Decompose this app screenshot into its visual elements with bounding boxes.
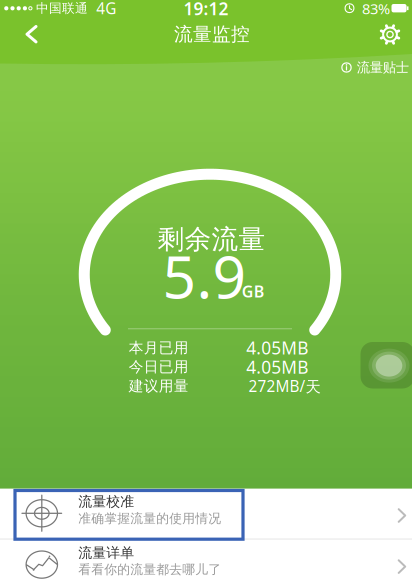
button[interactable]: 流量贴士 (336, 58, 412, 76)
button[interactable] (20, 22, 50, 46)
staticText: 剩余流量 (157, 223, 265, 256)
staticText: 流量贴士 (357, 59, 409, 76)
staticText: 看看你的流量都去哪儿了 (78, 561, 221, 578)
staticText: 83% (362, 0, 390, 18)
staticText: 准确掌握流量的使用情况 (78, 510, 221, 526)
staticText: 中国联通 (36, 0, 88, 16)
staticText: 流量监控 (174, 23, 250, 46)
button[interactable] (375, 19, 405, 49)
staticText: 4G (96, 0, 116, 19)
button[interactable]: 流量校准 (0, 489, 412, 539)
staticText: 4.05MB (246, 355, 308, 379)
staticText: 19:12 (183, 0, 228, 20)
staticText: 本月已用 (129, 339, 189, 357)
staticText: 今日已用 (129, 358, 189, 376)
staticText: 流量详单 (78, 544, 134, 562)
staticText: 272MB/天 (248, 376, 320, 397)
staticText: 流量校准 (78, 493, 134, 510)
button[interactable]: 流量详单 (0, 540, 412, 587)
staticText: 建议用量 (129, 377, 189, 395)
staticText: 5.9 (162, 237, 246, 315)
button[interactable] (360, 342, 412, 388)
staticText: 4.05MB (246, 336, 308, 360)
staticText: GB (242, 281, 265, 302)
